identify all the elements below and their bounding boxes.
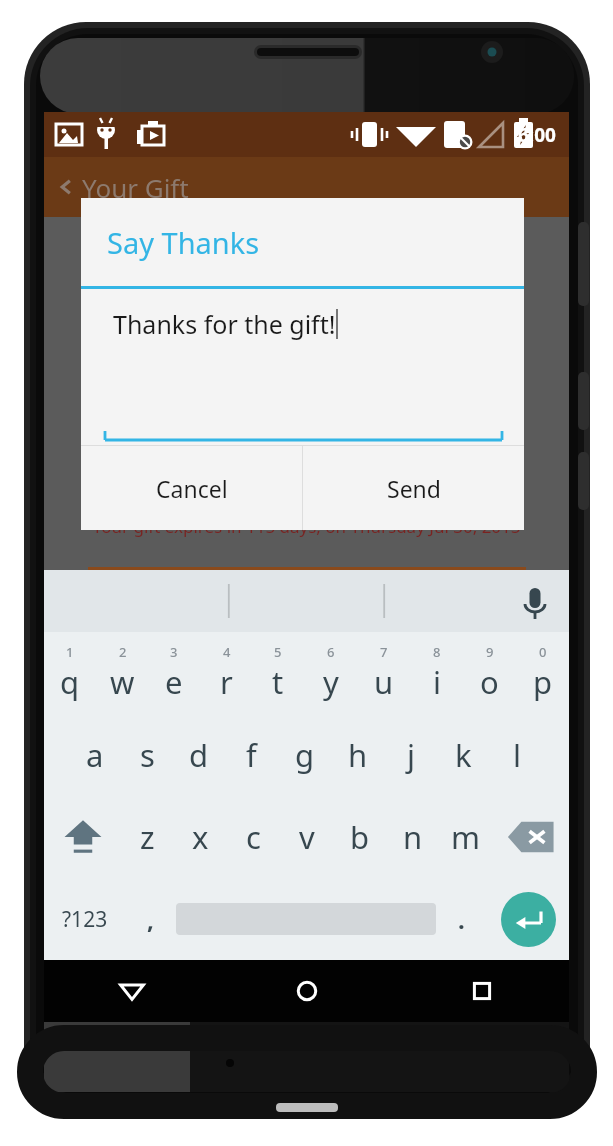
staticText: m — [451, 816, 480, 858]
staticText: x — [192, 816, 209, 858]
staticText: ?123 — [62, 905, 108, 934]
staticText: 5 — [274, 643, 282, 661]
button[interactable]: ?123 — [44, 878, 125, 960]
staticText: 9 — [486, 643, 494, 661]
staticText: 6 — [327, 643, 335, 661]
button[interactable]: l — [490, 714, 543, 796]
staticText: a — [86, 734, 104, 776]
staticText: Your gift expires in 115 days, on Thursd… — [44, 515, 569, 538]
button[interactable]: 4 — [200, 632, 252, 714]
staticText: 1 — [66, 643, 74, 661]
staticText: v — [299, 816, 315, 858]
staticText: Thanks for the gift! — [113, 307, 336, 341]
button[interactable]: Your Gift — [44, 157, 569, 217]
staticText: o — [480, 661, 499, 703]
button[interactable]: k — [437, 714, 490, 796]
staticText: 4 — [223, 643, 231, 661]
button[interactable]: 7 — [357, 632, 410, 714]
button[interactable]: c — [227, 796, 280, 878]
button[interactable]: v — [280, 796, 333, 878]
button[interactable]: g — [278, 714, 331, 796]
staticText: j — [407, 734, 415, 776]
staticText: w — [110, 661, 135, 703]
button[interactable]: 9 — [463, 632, 516, 714]
button[interactable]: 0 — [516, 632, 569, 714]
button[interactable]: . — [436, 878, 487, 960]
staticText: 0 — [539, 643, 547, 661]
button[interactable]: j — [384, 714, 437, 796]
staticText: d — [189, 734, 209, 776]
staticText: l — [513, 734, 521, 776]
button[interactable]: Recents — [394, 960, 569, 1022]
button[interactable]: 2 — [96, 632, 148, 714]
staticText: z — [140, 816, 155, 858]
staticText: y — [323, 661, 339, 703]
button[interactable]: z — [121, 796, 174, 878]
staticText: e — [165, 661, 183, 703]
staticText: t — [272, 661, 284, 703]
staticText: . — [458, 903, 465, 936]
staticText: 6:00 — [518, 122, 556, 148]
button[interactable]: 6 — [304, 632, 357, 714]
staticText: Say Thanks — [107, 223, 260, 262]
button[interactable]: h — [331, 714, 384, 796]
button[interactable]: f — [225, 714, 278, 796]
staticText: u — [374, 661, 394, 703]
staticText: Cancel — [156, 473, 228, 504]
staticText: , — [147, 903, 154, 936]
button[interactable]: s — [121, 714, 173, 796]
staticText: g — [295, 734, 315, 776]
button[interactable]: n — [386, 796, 439, 878]
staticText: 2 — [119, 643, 127, 661]
staticText: r — [220, 661, 233, 703]
button[interactable]: 8 — [410, 632, 463, 714]
staticText: q — [60, 661, 80, 703]
staticText: f — [246, 734, 257, 776]
staticText: i — [433, 661, 441, 703]
staticText: k — [455, 734, 472, 776]
staticText: n — [403, 816, 423, 858]
button[interactable]: a — [69, 714, 121, 796]
button[interactable]: 3 — [148, 632, 200, 714]
button[interactable]: Cancel — [81, 446, 302, 530]
staticText: h — [348, 734, 368, 776]
staticText: b — [350, 816, 370, 858]
button[interactable]: Shift — [44, 796, 121, 878]
button[interactable]: Backspace — [492, 796, 569, 878]
button[interactable]: Enter — [501, 892, 556, 947]
button[interactable]: 1 — [44, 632, 96, 714]
button[interactable]: 5 — [252, 632, 304, 714]
staticText: Your Gift — [82, 170, 189, 205]
staticText: c — [246, 816, 261, 858]
staticText: 3 — [170, 643, 178, 661]
button[interactable]: b — [333, 796, 386, 878]
staticText: p — [533, 661, 553, 703]
button[interactable]: x — [174, 796, 227, 878]
button[interactable]: m — [439, 796, 492, 878]
button[interactable]: Send — [303, 446, 524, 530]
button[interactable]: Voice input — [517, 583, 553, 619]
staticText: 7 — [380, 643, 388, 661]
staticText: s — [140, 734, 155, 776]
button[interactable]: Home — [219, 960, 394, 1022]
staticText: 8 — [433, 643, 441, 661]
button[interactable]: , — [125, 878, 176, 960]
button[interactable]: d — [173, 714, 225, 796]
button[interactable]: Back — [44, 960, 219, 1022]
staticText: Send — [387, 473, 441, 504]
